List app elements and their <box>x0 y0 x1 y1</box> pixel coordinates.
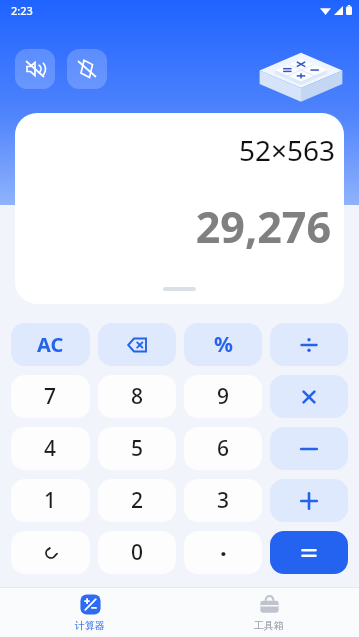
button[interactable]: 0 <box>98 531 176 574</box>
staticText: 2 <box>131 486 144 515</box>
button[interactable]: Backspace <box>98 323 176 366</box>
button[interactable]: · <box>184 531 262 574</box>
staticText: 工具箱 <box>254 619 284 632</box>
staticText: 3 <box>217 486 230 515</box>
button[interactable]: 5 <box>98 427 176 470</box>
staticText: 0 <box>131 538 144 567</box>
staticText: 5 <box>131 434 144 463</box>
button[interactable]: 52×563 <box>15 113 344 304</box>
button[interactable]: 9 <box>184 375 262 418</box>
button[interactable]: 8 <box>98 375 176 418</box>
button[interactable]: 4 <box>11 427 90 470</box>
other: Calculator illustration <box>255 33 347 101</box>
staticText: 8 <box>131 382 144 411</box>
button[interactable]: Minus <box>270 427 348 470</box>
button[interactable]: 工具箱 <box>179 588 359 637</box>
button[interactable]: Multiply <box>270 375 348 418</box>
button[interactable]: 2 <box>98 479 176 522</box>
button[interactable]: 计算器 <box>0 588 179 637</box>
button[interactable]: 1 <box>11 479 90 522</box>
button[interactable]: Vibration off <box>67 49 107 89</box>
staticText: 29,276 <box>195 197 331 256</box>
staticText: 7 <box>44 382 57 411</box>
button[interactable]: 3 <box>184 479 262 522</box>
button[interactable]: Plus <box>270 479 348 522</box>
staticText: 6 <box>217 434 230 463</box>
button[interactable]: Mute <box>15 49 55 89</box>
button[interactable]: Divide <box>270 323 348 366</box>
staticText: 1 <box>44 486 57 515</box>
button[interactable]: Equals <box>270 531 348 574</box>
staticText: · <box>220 536 227 569</box>
staticText: AC <box>37 331 64 358</box>
staticText: 9 <box>217 382 230 411</box>
button[interactable]: AC <box>11 323 90 366</box>
button[interactable]: % <box>184 323 262 366</box>
staticText: 52×563 <box>238 131 335 169</box>
staticText: 4 <box>44 434 57 463</box>
staticText: 计算器 <box>75 619 105 632</box>
button[interactable]: 7 <box>11 375 90 418</box>
button[interactable]: 6 <box>184 427 262 470</box>
staticText: % <box>214 330 233 359</box>
button[interactable]: Convert <box>11 531 90 574</box>
staticText: 2:23 <box>11 3 33 18</box>
